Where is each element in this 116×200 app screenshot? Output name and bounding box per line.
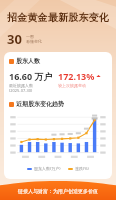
other: Section marker (9, 102, 14, 107)
staticText: 172.13% (58, 70, 95, 82)
button[interactable]: Section marker (4, 52, 112, 179)
button[interactable]: Section marker (9, 100, 64, 108)
staticText: 较上次披露变动 (58, 83, 86, 88)
staticText: 30 (7, 30, 22, 48)
staticText: 16.60 万户 (9, 70, 53, 82)
staticText: 近期股东变化趋势 (16, 100, 64, 108)
other: Section marker (9, 59, 14, 64)
staticText: 一图 (26, 34, 34, 39)
staticText: 股东人数 (16, 57, 40, 65)
staticText: 最近披露人数 (9, 83, 33, 88)
staticText: 看懂变化 (26, 39, 42, 44)
staticText: 链接人与财富：为用户创造更多价值 (18, 188, 98, 194)
staticText: (2025-07-30) (9, 88, 33, 93)
button[interactable]: Section marker (9, 57, 40, 65)
staticText: 涨跌(%) (75, 166, 89, 171)
staticText: 招金黄金最新股东变化 (0, 11, 116, 24)
staticText: 股东人数(万户) (34, 166, 61, 171)
